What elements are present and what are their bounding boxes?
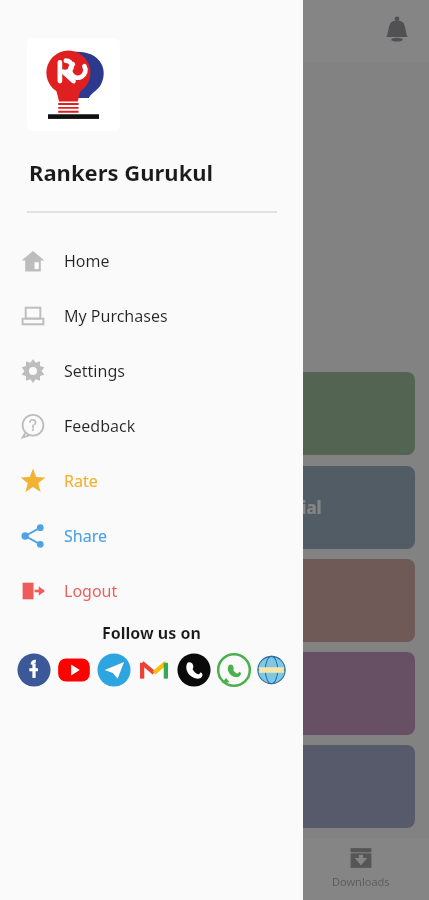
button[interactable]: My Purchases — [0, 288, 303, 343]
button[interactable]: Feedback — [0, 398, 303, 453]
button[interactable]: YouTube — [56, 652, 92, 688]
staticText: Follow us on — [102, 622, 201, 644]
button[interactable]: Facebook — [16, 652, 52, 688]
button[interactable]: Telegram — [96, 652, 132, 688]
staticText: Rate — [64, 470, 98, 492]
button[interactable]: Gmail — [136, 652, 172, 688]
staticText: Feedback — [64, 415, 136, 437]
staticText: My Purchases — [64, 305, 168, 327]
button[interactable]: Demo Videos — [140, 372, 415, 455]
button[interactable] — [27, 38, 120, 131]
staticText: Free Study Material — [156, 496, 322, 519]
staticText: Logout — [64, 580, 118, 602]
button[interactable]: Website — [256, 652, 287, 688]
staticText: Rankers Gurukul — [29, 157, 214, 187]
button[interactable]: Call — [176, 652, 212, 688]
button[interactable]: Logout — [0, 563, 303, 618]
button[interactable]: Quiz — [140, 652, 415, 735]
staticText: Settings — [64, 360, 125, 382]
button[interactable]: Free Study Material — [140, 466, 415, 549]
button[interactable]: Share — [0, 508, 303, 563]
staticText: Quiz — [156, 682, 194, 705]
button[interactable]: Home — [0, 233, 303, 288]
staticText: Downloads — [332, 874, 390, 889]
button[interactable]: Store — [140, 559, 415, 642]
button[interactable]: Downloads — [330, 845, 392, 889]
button[interactable]: Notifications — [380, 14, 414, 48]
button[interactable]: Rate — [0, 453, 303, 508]
button[interactable]: Settings — [0, 343, 303, 398]
button[interactable]: WhatsApp — [216, 652, 252, 688]
staticText: Share — [64, 525, 107, 547]
button[interactable]: Post — [140, 745, 415, 828]
staticText: Home — [64, 250, 110, 272]
